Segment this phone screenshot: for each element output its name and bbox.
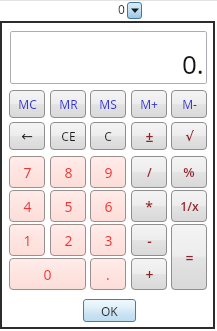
button[interactable]: 3: [90, 224, 126, 256]
button[interactable]: 9: [90, 156, 126, 188]
button[interactable]: M-: [171, 90, 207, 118]
staticText: 5: [64, 197, 73, 216]
staticText: MS: [99, 96, 117, 112]
button[interactable]: ←: [9, 122, 45, 150]
button[interactable]: √: [171, 122, 207, 150]
staticText: 0: [118, 1, 125, 17]
button[interactable]: 2: [50, 224, 86, 256]
button[interactable]: .: [90, 258, 126, 290]
staticText: -: [147, 231, 152, 250]
button[interactable]: 1/x: [171, 190, 207, 222]
staticText: ←: [21, 128, 33, 144]
button[interactable]: /: [131, 156, 167, 188]
staticText: 4: [23, 197, 32, 216]
button[interactable]: MC: [9, 90, 45, 118]
staticText: MC: [18, 96, 37, 112]
button[interactable]: M+: [131, 90, 167, 118]
button[interactable]: [127, 2, 142, 19]
staticText: MR: [59, 96, 78, 112]
button[interactable]: 5: [50, 190, 86, 222]
staticText: 2: [64, 231, 73, 250]
button[interactable]: OK: [83, 299, 136, 322]
button[interactable]: CE: [50, 122, 86, 150]
staticText: OK: [101, 303, 118, 319]
staticText: 0.: [182, 46, 204, 81]
staticText: M-: [182, 96, 197, 112]
staticText: 7: [23, 163, 32, 182]
staticText: /: [147, 164, 152, 180]
button[interactable]: MS: [90, 90, 126, 118]
button[interactable]: 4: [9, 190, 45, 222]
button[interactable]: =: [171, 224, 207, 290]
button[interactable]: C: [90, 122, 126, 150]
button[interactable]: 1: [9, 224, 45, 256]
staticText: 1/x: [180, 198, 199, 214]
button[interactable]: -: [131, 224, 167, 256]
button[interactable]: 7: [9, 156, 45, 188]
staticText: 1: [23, 231, 32, 250]
button[interactable]: +: [131, 258, 167, 290]
staticText: CE: [61, 128, 76, 144]
button[interactable]: 8: [50, 156, 86, 188]
staticText: 8: [64, 163, 73, 182]
button[interactable]: ±: [131, 122, 167, 150]
staticText: *: [145, 197, 153, 216]
staticText: 3: [104, 231, 113, 250]
button[interactable]: 0.: [10, 31, 207, 84]
staticText: C: [104, 128, 112, 144]
button[interactable]: MR: [50, 90, 86, 118]
staticText: M+: [140, 96, 158, 112]
staticText: +: [145, 265, 154, 284]
staticText: 0: [43, 265, 52, 284]
staticText: 9: [104, 163, 113, 182]
staticText: √: [185, 129, 194, 144]
button[interactable]: %: [171, 156, 207, 188]
staticText: 6: [104, 197, 113, 216]
button[interactable]: 6: [90, 190, 126, 222]
staticText: .: [106, 265, 110, 284]
staticText: =: [185, 248, 194, 267]
staticText: ±: [145, 127, 154, 146]
button[interactable]: *: [131, 190, 167, 222]
button[interactable]: 0: [9, 258, 86, 290]
staticText: %: [183, 163, 195, 181]
